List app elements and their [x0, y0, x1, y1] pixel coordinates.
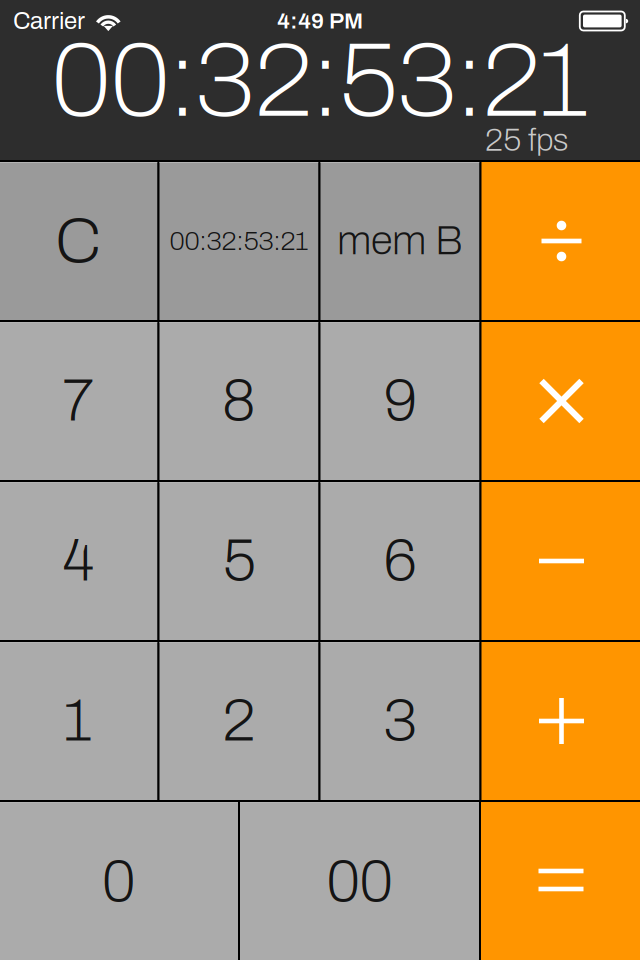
- staticText: 1: [64, 689, 92, 753]
- button[interactable]: Equals: [481, 802, 640, 960]
- button[interactable]: 8: [159, 322, 318, 480]
- button[interactable]: mem B: [320, 162, 479, 320]
- staticText: 0: [102, 850, 135, 914]
- staticText: 00:32:53:21: [169, 226, 308, 255]
- staticText: mem B: [337, 219, 463, 263]
- button[interactable]: Add: [481, 642, 640, 800]
- staticText: 8: [222, 369, 256, 433]
- staticText: 25 fps: [485, 123, 568, 157]
- staticText: Carrier: [13, 8, 85, 34]
- staticText: C: [55, 207, 101, 275]
- staticText: 6: [383, 529, 416, 593]
- button[interactable]: 9: [320, 322, 479, 480]
- staticText: 9: [383, 369, 416, 433]
- button[interactable]: 5: [159, 482, 318, 640]
- staticText: 3: [383, 689, 416, 753]
- button[interactable]: 1: [0, 642, 157, 800]
- button[interactable]: 4: [0, 482, 157, 640]
- staticText: 00:32:53:21: [51, 24, 588, 138]
- staticText: 2: [222, 689, 255, 753]
- button[interactable]: Multiply: [481, 322, 640, 480]
- button[interactable]: 2: [159, 642, 318, 800]
- button[interactable]: 00:32:53:21: [159, 162, 318, 320]
- staticText: 00: [326, 850, 392, 914]
- button[interactable]: 3: [320, 642, 479, 800]
- staticText: 4:49 PM: [277, 9, 363, 33]
- button[interactable]: 00: [240, 802, 479, 960]
- button[interactable]: 0: [0, 802, 238, 960]
- staticText: 7: [62, 369, 93, 433]
- button[interactable]: C: [0, 162, 157, 320]
- button[interactable]: Divide: [481, 162, 640, 320]
- button[interactable]: Subtract: [481, 482, 640, 640]
- staticText: 4: [62, 529, 93, 593]
- button[interactable]: 6: [320, 482, 479, 640]
- staticText: 5: [222, 529, 255, 593]
- button[interactable]: 7: [0, 322, 157, 480]
